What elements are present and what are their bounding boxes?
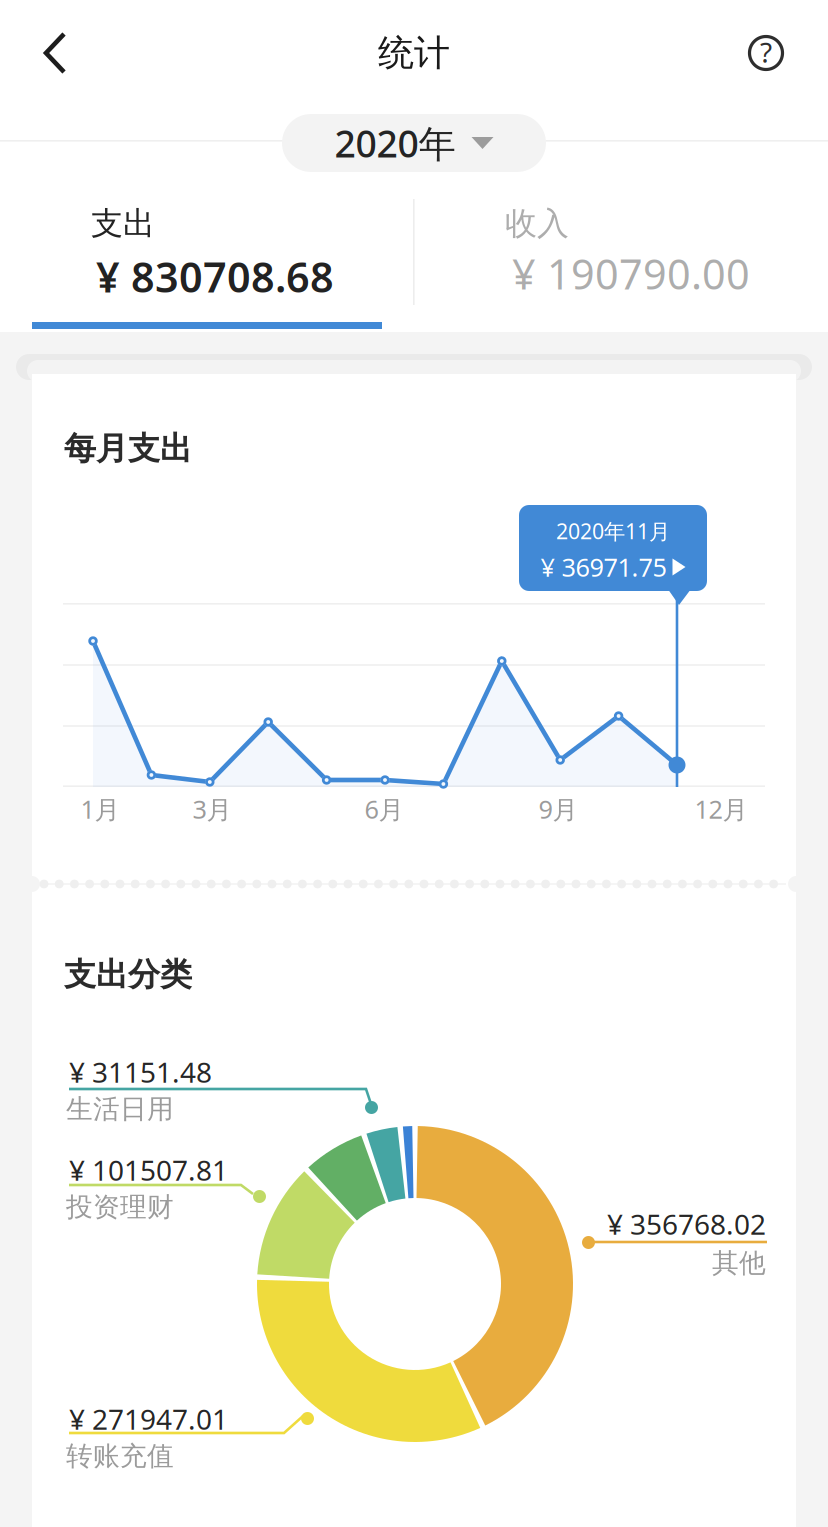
staticText: 2020年11月 xyxy=(556,517,670,545)
staticText: 2020年 xyxy=(334,118,455,168)
staticText: 收入 xyxy=(505,204,569,243)
button[interactable]: 2020年 xyxy=(282,114,546,172)
staticText: 1月 xyxy=(80,792,119,826)
staticText: ¥ 31151.48 xyxy=(69,1053,212,1091)
staticText: 9月 xyxy=(538,792,577,826)
staticText: ¥ 36971.75 xyxy=(540,550,666,584)
staticText: ? xyxy=(760,33,772,71)
staticText: 支出分类 xyxy=(64,955,192,994)
staticText: 每月支出 xyxy=(64,429,192,468)
staticText: 转账充值 xyxy=(66,1440,174,1472)
staticText: 12月 xyxy=(694,792,747,826)
staticText: 支出 xyxy=(91,204,155,243)
staticText: 投资理财 xyxy=(66,1191,174,1223)
staticText: 生活日用 xyxy=(66,1093,174,1125)
staticText: ¥ 101507.81 xyxy=(69,1151,228,1189)
button[interactable]: 帮助 xyxy=(716,0,816,106)
staticText: ¥ 271947.01 xyxy=(69,1400,228,1438)
button[interactable]: 返回 xyxy=(6,0,106,106)
staticText: 6月 xyxy=(364,792,403,826)
staticText: 3月 xyxy=(192,792,231,826)
staticText: 其他 xyxy=(712,1247,766,1279)
staticText: ¥ 190790.00 xyxy=(512,246,750,301)
staticText: ¥ 356768.02 xyxy=(607,1205,766,1243)
staticText: ¥ 830708.68 xyxy=(96,249,334,304)
staticText: 统计 xyxy=(378,31,450,75)
